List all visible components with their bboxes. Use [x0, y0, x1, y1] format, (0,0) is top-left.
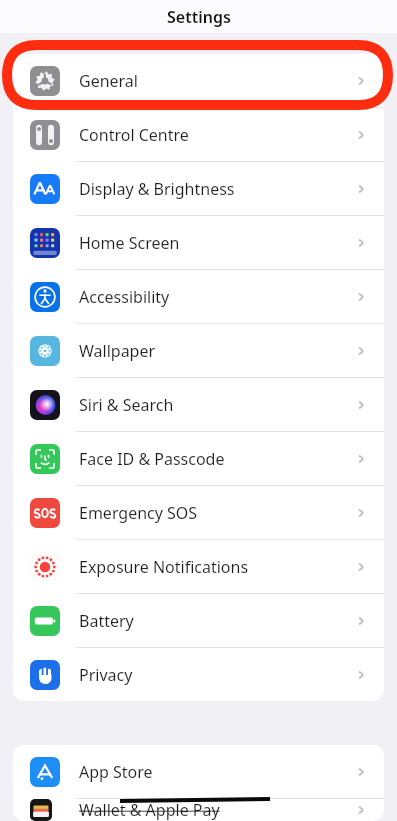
staticText: Wallpaper	[79, 340, 156, 362]
staticText: Control Centre	[79, 124, 189, 146]
button[interactable]: Siri & Search	[13, 378, 384, 431]
button[interactable]: Privacy	[13, 648, 384, 701]
button[interactable]: Accessibility	[13, 270, 384, 323]
staticText: Privacy	[79, 664, 133, 686]
button[interactable]: Display & Brightness	[13, 162, 384, 215]
staticText: Home Screen	[79, 232, 180, 254]
staticText: App Store	[79, 761, 153, 783]
staticText: Face ID & Passcode	[79, 448, 225, 470]
button[interactable]: Battery	[13, 594, 384, 647]
staticText: Exposure Notifications	[79, 556, 249, 578]
button[interactable]: Face ID & Passcode	[13, 432, 384, 485]
button[interactable]: Control Centre	[13, 108, 384, 161]
button[interactable]: Exposure Notifications	[13, 540, 384, 593]
staticText: Wallet & Apple Pay	[79, 799, 220, 821]
staticText: Siri & Search	[79, 394, 174, 416]
staticText: Settings	[167, 6, 231, 28]
staticText: Emergency SOS	[79, 502, 198, 524]
staticText: Battery	[79, 610, 134, 632]
button[interactable]: General	[13, 54, 384, 107]
button[interactable]: Wallpaper	[13, 324, 384, 377]
staticText: Display & Brightness	[79, 178, 235, 200]
button[interactable]: Emergency SOS	[13, 486, 384, 539]
button[interactable]: Home Screen	[13, 216, 384, 269]
staticText: Accessibility	[79, 286, 170, 308]
staticText: General	[79, 70, 138, 92]
button[interactable]: Wallet & Apple Pay	[13, 799, 384, 821]
button[interactable]: App Store	[13, 745, 384, 798]
